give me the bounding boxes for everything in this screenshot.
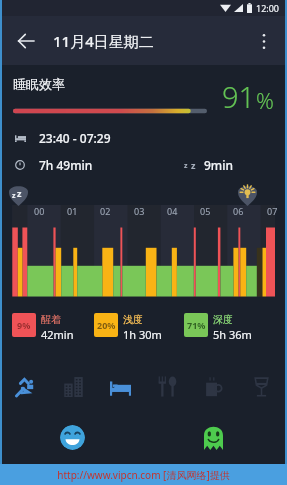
staticText: 20% — [97, 319, 116, 331]
staticText: 04 — [167, 205, 178, 217]
staticText: 42min — [41, 327, 74, 342]
staticText: 深度 — [213, 313, 233, 326]
staticText: 12:00 — [256, 2, 280, 14]
staticText: z — [17, 187, 22, 199]
button[interactable]: 9% — [12, 313, 74, 342]
button[interactable]: 71% — [184, 313, 252, 342]
staticText: 71% — [187, 319, 206, 331]
button[interactable]: Work — [50, 368, 97, 404]
staticText: % — [256, 85, 274, 115]
staticText: 11月4日星期二 — [53, 31, 154, 51]
button[interactable]: Back — [8, 23, 44, 59]
staticText: 1h 30m — [123, 327, 162, 342]
staticText: z — [12, 191, 16, 201]
staticText: 9% — [17, 319, 31, 331]
staticText: 05 — [200, 205, 211, 217]
button[interactable]: Sleep — [97, 368, 144, 404]
staticText: http://www.vipcn.com [清风网络]提供 — [57, 468, 230, 482]
button[interactable]: 20% — [94, 313, 162, 342]
button[interactable]: Mood happy — [60, 425, 85, 450]
staticText: z — [184, 161, 188, 171]
staticText: 5h 36m — [213, 327, 252, 342]
button[interactable]: More options — [246, 23, 282, 59]
staticText: 7h 49min — [39, 157, 93, 173]
button[interactable]: Alcohol — [238, 368, 285, 404]
staticText: 03 — [134, 205, 145, 217]
staticText: 浅度 — [123, 313, 143, 326]
staticText: 醒着 — [41, 313, 61, 326]
staticText: 23:40 - 07:29 — [39, 130, 111, 146]
button[interactable]: Mood monster — [204, 424, 223, 450]
button[interactable]: Coffee — [191, 368, 238, 404]
button[interactable]: Wake up time — [238, 183, 257, 206]
staticText: 00 — [34, 205, 45, 217]
button[interactable]: Exercise — [2, 368, 50, 404]
staticText: 02 — [100, 205, 111, 217]
button[interactable]: Meal — [144, 368, 191, 404]
staticText: 91 — [222, 77, 256, 116]
staticText: 07 — [267, 205, 278, 217]
staticText: 睡眠效率 — [13, 76, 65, 92]
button[interactable]: Bed time — [9, 183, 28, 206]
staticText: 01 — [67, 205, 78, 217]
staticText: z — [191, 159, 196, 171]
staticText: 06 — [233, 205, 244, 217]
staticText: 9min — [204, 157, 233, 173]
